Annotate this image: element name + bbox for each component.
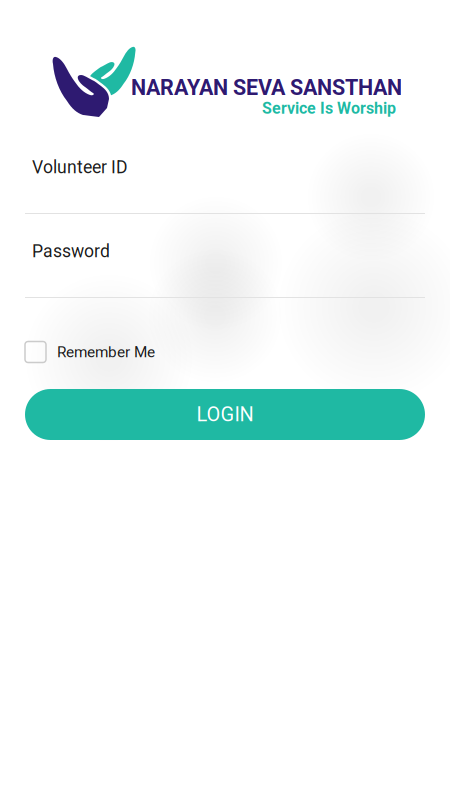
staticText: LOGIN	[196, 403, 253, 426]
button[interactable]: Remember Me	[25, 341, 225, 363]
staticText: Password	[32, 241, 110, 262]
staticText: Volunteer ID	[32, 157, 128, 178]
staticText: Remember Me	[57, 343, 155, 361]
staticText: Service Is Worship	[262, 99, 396, 118]
button[interactable]: LOGIN	[25, 389, 425, 440]
staticText: NARAYAN SEVA SANSTHAN	[131, 75, 402, 100]
